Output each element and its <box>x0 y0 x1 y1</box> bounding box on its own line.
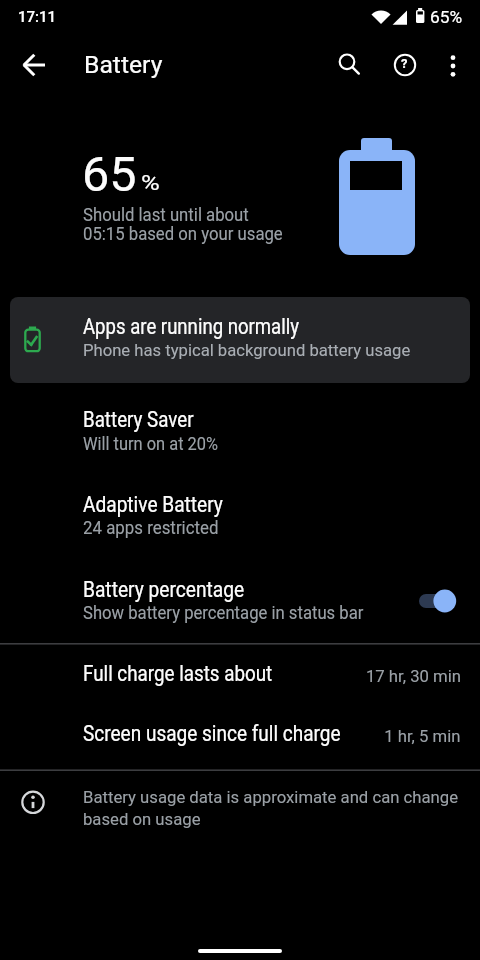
button[interactable] <box>410 577 464 625</box>
staticText: Screen usage since full charge <box>83 721 341 746</box>
button[interactable]: Battery Saver <box>0 405 480 490</box>
staticText: Phone has typical background battery usa… <box>83 340 411 360</box>
button[interactable]: Full charge lasts about <box>0 645 480 708</box>
staticText: % <box>141 171 161 195</box>
staticText: Battery usage data is approximate and ca… <box>83 787 458 829</box>
staticText: 1 hr, 5 min <box>384 726 461 746</box>
button[interactable] <box>14 45 54 85</box>
staticText: Full charge lasts about <box>83 661 273 686</box>
staticText: 17 hr, 30 min <box>366 666 461 686</box>
staticText: Adaptive Battery <box>83 492 223 517</box>
button[interactable]: Battery percentage <box>0 575 480 643</box>
staticText: Battery Saver <box>83 407 194 432</box>
staticText: Battery percentage <box>83 577 245 602</box>
staticText: 24 apps restricted <box>83 518 219 539</box>
staticText: Apps are running normally <box>83 314 299 339</box>
button[interactable] <box>433 45 473 85</box>
button[interactable] <box>385 45 425 85</box>
button[interactable] <box>327 45 367 85</box>
staticText: Will turn on at 20% <box>83 434 218 455</box>
staticText: 17:11 <box>18 8 57 26</box>
staticText: 65 <box>82 146 137 203</box>
button[interactable]: Adaptive Battery <box>0 490 480 575</box>
button[interactable]: Screen usage since full charge <box>0 708 480 770</box>
button[interactable]: Apps are running normally <box>10 297 470 383</box>
staticText: Battery <box>84 51 162 78</box>
staticText: Should last until about 05:15 based on y… <box>83 205 283 244</box>
staticText: Show battery percentage in status bar <box>83 603 364 624</box>
staticText: ? <box>401 56 408 71</box>
staticText: 65% <box>430 7 463 27</box>
